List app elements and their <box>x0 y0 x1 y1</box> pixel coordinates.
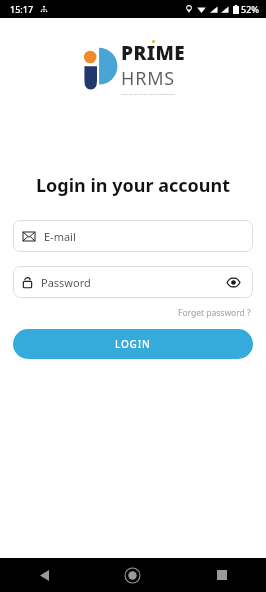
button[interactable]: Recent apps <box>177 558 266 592</box>
button[interactable]: E-mail <box>13 220 253 252</box>
staticText: Login in your account <box>0 173 266 198</box>
button[interactable]: Password <box>13 266 253 298</box>
staticText: Forget password ? <box>178 307 251 319</box>
button[interactable]: Home <box>88 558 177 592</box>
staticText: 15:17 <box>10 3 34 15</box>
button[interactable]: Forget password ? <box>176 305 253 321</box>
staticText: PRIME <box>121 40 186 66</box>
staticText: YOUR VALUED HR SOLUTION FOR EVERYONE <box>121 92 175 95</box>
staticText: HRMS <box>121 66 175 91</box>
staticText: 52% <box>241 3 259 15</box>
staticText: E-mail <box>44 229 76 244</box>
button[interactable]: Back <box>0 558 88 592</box>
button[interactable]: Show password <box>223 272 243 292</box>
staticText: Password <box>41 275 91 290</box>
staticText: LOGIN <box>115 337 151 351</box>
button[interactable]: LOGIN <box>13 329 253 359</box>
